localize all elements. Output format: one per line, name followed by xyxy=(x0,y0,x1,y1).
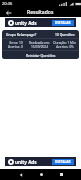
staticText: 10 Questões xyxy=(55,32,75,36)
button[interactable]: unity Ads xyxy=(5,18,76,27)
staticText: Reiniciar Questões xyxy=(26,53,56,57)
staticText: INSTALAR xyxy=(55,160,71,164)
button[interactable]: Back xyxy=(4,8,13,17)
staticText: 20:36 xyxy=(2,1,13,6)
button[interactable]: Home xyxy=(31,169,51,180)
button[interactable]: INSTALAR xyxy=(52,20,74,26)
button[interactable]: unity Ads xyxy=(5,157,76,166)
button[interactable]: Recent apps xyxy=(51,169,71,180)
staticText: Acertos: 0% xyxy=(56,45,74,49)
staticText: unity Ads xyxy=(15,20,37,26)
button[interactable]: Back xyxy=(10,169,31,180)
staticText: INSTALAR xyxy=(55,21,71,25)
button[interactable]: Grupo Relampago? xyxy=(2,30,79,59)
staticText: Realizado em: xyxy=(29,41,50,45)
staticText: 16/09/2024 xyxy=(31,45,48,49)
staticText: Erros: 10 xyxy=(9,41,23,45)
staticText: Acertos: 0 xyxy=(8,45,23,49)
staticText: Duração: 1 Min xyxy=(53,41,76,45)
staticText: Resultados xyxy=(27,9,54,16)
staticText: unity Ads xyxy=(15,159,37,165)
staticText: Grupo Relampago? xyxy=(6,32,37,36)
button[interactable]: INSTALAR xyxy=(52,159,74,165)
